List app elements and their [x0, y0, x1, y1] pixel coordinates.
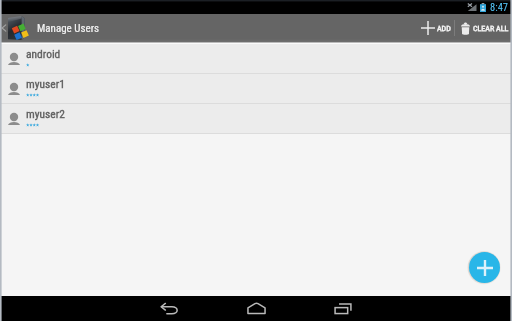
button[interactable]: myuser2	[0, 104, 512, 134]
staticText: myuser1	[26, 77, 65, 90]
staticText: 8:47	[490, 1, 509, 13]
other: Navigate up	[0, 22, 8, 34]
button[interactable]: Navigate up	[0, 14, 99, 42]
button[interactable]: myuser1	[0, 74, 512, 104]
button[interactable]: ADD	[412, 14, 454, 42]
button[interactable]: Add user	[469, 252, 500, 283]
button[interactable]: Recent apps	[314, 296, 372, 321]
button[interactable]: Back	[140, 296, 198, 321]
button[interactable]: Home	[227, 296, 285, 321]
button[interactable]: android	[0, 44, 512, 74]
staticText: myuser2	[26, 107, 65, 120]
staticText: android	[26, 47, 61, 60]
staticText: Manage Users	[37, 22, 99, 35]
button[interactable]: CLEAR ALL	[455, 14, 512, 42]
staticText: ADD	[437, 24, 451, 33]
staticText: CLEAR ALL	[473, 24, 509, 33]
